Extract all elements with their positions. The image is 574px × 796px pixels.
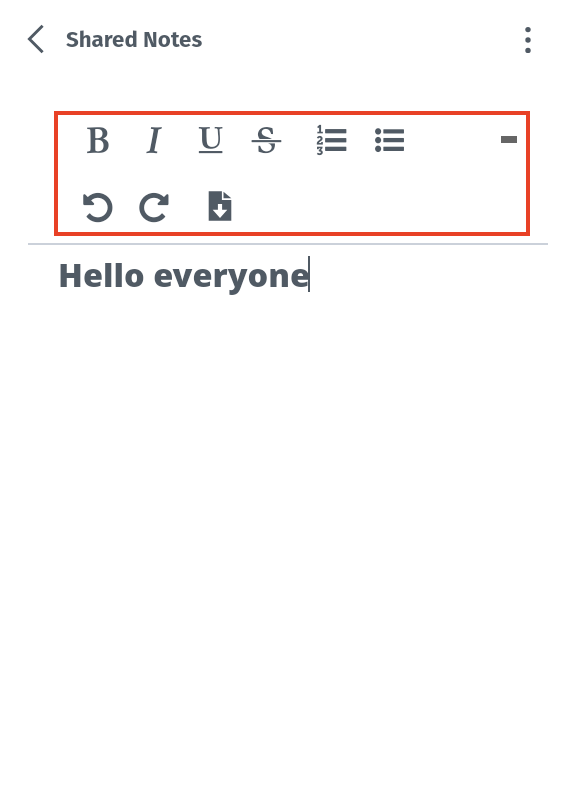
staticText:  [375, 125, 404, 155]
staticText:  [83, 190, 113, 225]
button[interactable]: Bold [75, 117, 121, 163]
staticText:  [139, 190, 169, 225]
button[interactable]: Back [12, 15, 60, 63]
button[interactable]: Italic [131, 117, 177, 163]
button[interactable]: Underline [187, 117, 233, 163]
staticText: Hello everyone [58, 252, 311, 296]
button[interactable]: Undo [75, 184, 121, 230]
button[interactable]: Collapse toolbar [487, 117, 529, 159]
button[interactable]: More options [504, 16, 552, 64]
staticText:  [87, 125, 109, 155]
button[interactable]: Save to file [197, 183, 243, 229]
button[interactable]: Strikethrough [243, 117, 289, 163]
button[interactable]: Numbered list [308, 117, 354, 163]
staticText:  [251, 125, 282, 155]
button[interactable]: Redo [131, 184, 177, 230]
staticText:  [316, 125, 347, 155]
staticText: Shared Notes [66, 26, 203, 53]
staticText:  [198, 125, 223, 155]
button[interactable]: Bulleted list [366, 117, 412, 163]
staticText:  [146, 125, 162, 155]
